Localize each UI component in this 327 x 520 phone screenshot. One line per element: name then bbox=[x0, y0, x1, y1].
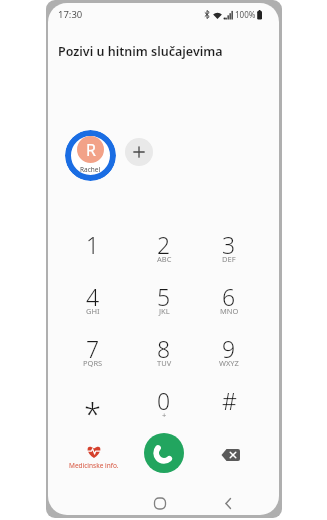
button[interactable]: 4 bbox=[64, 281, 122, 323]
staticText: R bbox=[86, 139, 96, 161]
staticText: 6 bbox=[222, 281, 236, 309]
button[interactable]: 6 bbox=[200, 281, 258, 323]
button[interactable]: * bbox=[64, 385, 122, 427]
staticText: 1 bbox=[86, 229, 100, 257]
button[interactable]: 8 bbox=[135, 333, 193, 375]
button[interactable]: 3 bbox=[200, 229, 258, 271]
button[interactable]: Medicinske info. bbox=[65, 442, 122, 472]
button[interactable] bbox=[144, 433, 184, 473]
staticText: 0 bbox=[157, 385, 171, 413]
button[interactable]: 5 bbox=[135, 281, 193, 323]
staticText: 17:30 bbox=[58, 8, 83, 20]
button[interactable]: 1 bbox=[64, 229, 122, 271]
staticText: # bbox=[222, 385, 237, 413]
staticText: DEF bbox=[222, 254, 236, 264]
button[interactable] bbox=[152, 495, 168, 511]
button[interactable]: 7 bbox=[64, 333, 122, 375]
button[interactable] bbox=[125, 138, 153, 166]
staticText: Medicinske info. bbox=[69, 461, 119, 470]
staticText: 100% bbox=[235, 9, 256, 20]
staticText: 3 bbox=[222, 229, 236, 257]
staticText: Rachel bbox=[80, 165, 101, 174]
staticText: PQRS bbox=[83, 358, 103, 368]
staticText: Pozivi u hitnim slučajevima bbox=[58, 43, 223, 60]
button[interactable]: 9 bbox=[200, 333, 258, 375]
staticText: MNO bbox=[220, 306, 239, 316]
button[interactable] bbox=[221, 448, 243, 463]
staticText: 8 bbox=[157, 333, 171, 361]
staticText: 4 bbox=[86, 281, 100, 309]
staticText: GHI bbox=[86, 306, 100, 316]
staticText: JKL bbox=[159, 306, 170, 316]
staticText: 9 bbox=[222, 333, 236, 361]
button[interactable] bbox=[220, 495, 236, 511]
staticText: ABC bbox=[157, 254, 172, 264]
staticText: + bbox=[162, 410, 167, 420]
staticText: WXYZ bbox=[219, 358, 239, 368]
button[interactable]: # bbox=[200, 385, 258, 427]
staticText: 7 bbox=[86, 333, 100, 361]
staticText: * bbox=[84, 392, 102, 420]
staticText: 2 bbox=[157, 229, 171, 257]
button[interactable] bbox=[65, 130, 116, 181]
staticText: TUV bbox=[157, 358, 172, 368]
button[interactable]: 2 bbox=[135, 229, 193, 271]
button[interactable]: 0 bbox=[135, 385, 193, 427]
staticText: 5 bbox=[157, 281, 171, 309]
